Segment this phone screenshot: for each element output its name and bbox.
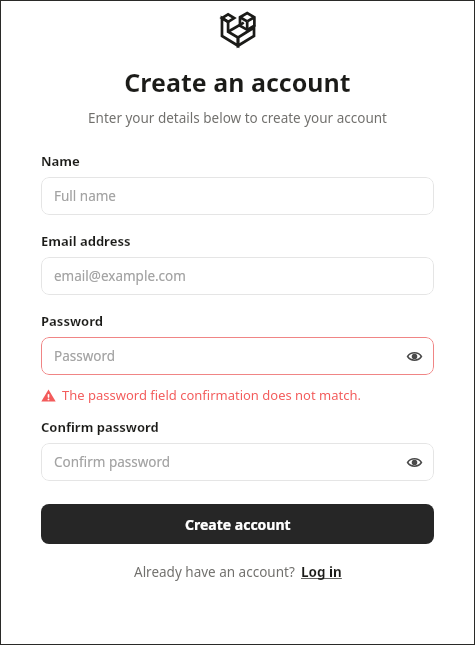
- button[interactable]: Log in: [301, 563, 342, 581]
- staticText: Log in: [301, 563, 342, 581]
- button[interactable]: Password: [41, 337, 434, 375]
- staticText: Name: [41, 152, 80, 170]
- staticText: Password: [41, 312, 103, 330]
- staticText: Email address: [41, 232, 131, 250]
- staticText: Already have an account?: [134, 563, 295, 581]
- other: Laravel logo: [220, 11, 256, 49]
- staticText: Create an account: [124, 65, 351, 99]
- staticText: Confirm password: [54, 453, 171, 471]
- button[interactable]: Full name: [41, 177, 434, 215]
- staticText: Enter your details below to create your …: [88, 109, 387, 127]
- button[interactable]: Show Password: [403, 345, 425, 367]
- button[interactable]: Show Confirm password: [403, 451, 425, 473]
- staticText: The password field confirmation does not…: [62, 386, 361, 404]
- staticText: email@example.com: [54, 267, 186, 285]
- staticText: Confirm password: [41, 418, 159, 436]
- staticText: Password: [54, 347, 116, 365]
- staticText: Full name: [54, 187, 116, 205]
- button[interactable]: email@example.com: [41, 257, 434, 295]
- button[interactable]: Confirm password: [41, 443, 434, 481]
- button[interactable]: Create account: [41, 504, 434, 544]
- staticText: Create account: [185, 515, 291, 534]
